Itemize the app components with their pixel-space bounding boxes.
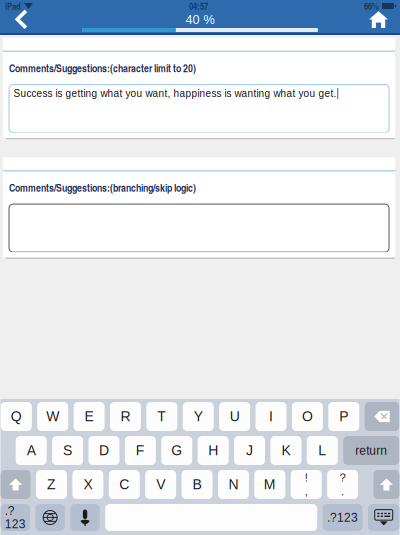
staticText: J [246, 443, 253, 458]
button[interactable]: D [88, 436, 119, 465]
button[interactable]: return [343, 436, 399, 465]
staticText: P [339, 409, 348, 424]
staticText: D [99, 443, 109, 458]
button[interactable]: W [37, 402, 68, 431]
staticText: K [281, 443, 290, 458]
button[interactable]: B [182, 470, 213, 499]
staticText: V [156, 477, 165, 492]
staticText: Y [194, 409, 203, 424]
button[interactable]: Back [0, 8, 42, 30]
staticText: N [228, 477, 238, 492]
button[interactable]: Home [357, 8, 400, 30]
staticText: ? [340, 471, 346, 484]
button[interactable]: Q [1, 402, 32, 431]
button[interactable]: T [146, 402, 177, 431]
button[interactable]: Success is getting what you want, happin… [3, 76, 395, 133]
button[interactable]: Shift [373, 470, 399, 499]
button[interactable]: Next keyboard [35, 504, 65, 531]
button[interactable]: J [234, 436, 265, 465]
button[interactable]: M [254, 470, 285, 499]
button[interactable]: H [198, 436, 229, 465]
button[interactable]: Hide keyboard [368, 504, 399, 531]
staticText: return [355, 444, 387, 457]
staticText: W [46, 409, 59, 424]
button[interactable]: Z [36, 470, 67, 499]
staticText: H [208, 443, 218, 458]
button[interactable]: C [109, 470, 140, 499]
button[interactable]: R [110, 402, 141, 431]
button[interactable]: I [255, 402, 286, 431]
staticText: E [85, 409, 94, 424]
button[interactable]: ! [291, 470, 322, 499]
button[interactable]: G [161, 436, 192, 465]
staticText: S [63, 443, 72, 458]
staticText: Success is getting what you want, happin… [13, 88, 336, 99]
staticText: L [318, 443, 326, 458]
staticText: C [119, 477, 129, 492]
button[interactable]: X [72, 470, 103, 499]
button[interactable]: Dictate [70, 504, 100, 531]
staticText: . [341, 485, 344, 498]
button[interactable]: O [292, 402, 323, 431]
button[interactable]: P [328, 402, 359, 431]
staticText: F [136, 443, 145, 458]
staticText: .?123 [5, 504, 26, 531]
staticText: , [305, 485, 308, 498]
staticText: Z [47, 477, 56, 492]
staticText: Comments/Suggestions:(branching/skip log… [9, 180, 196, 195]
staticText: M [264, 477, 276, 492]
staticText: ! [305, 471, 308, 484]
staticText: Q [11, 409, 22, 424]
staticText: 66% [364, 0, 379, 13]
staticText: I [269, 409, 273, 424]
button[interactable] [3, 195, 395, 252]
button[interactable]: .?123 [323, 504, 363, 531]
button[interactable]: Shift [1, 470, 31, 499]
staticText: B [193, 477, 202, 492]
staticText: U [230, 409, 240, 424]
button[interactable]: N [218, 470, 249, 499]
button[interactable]: Y [183, 402, 214, 431]
button[interactable]: S [52, 436, 83, 465]
button[interactable]: ? [327, 470, 358, 499]
button[interactable]: .?123 [0, 504, 30, 531]
staticText: R [120, 409, 130, 424]
staticText: Comments/Suggestions:(character limit to… [9, 60, 196, 76]
button[interactable]: E [74, 402, 105, 431]
button[interactable]: F [125, 436, 156, 465]
staticText: O [302, 409, 313, 424]
staticText: iPad [5, 0, 21, 13]
button[interactable]: U [219, 402, 250, 431]
staticText: 04:57 [189, 0, 208, 13]
button[interactable]: A [16, 436, 47, 465]
button[interactable]: Delete [365, 402, 399, 431]
button[interactable]: V [145, 470, 176, 499]
button[interactable]: K [270, 436, 301, 465]
staticText: G [171, 443, 182, 458]
staticText: T [157, 409, 166, 424]
button[interactable]: L [307, 436, 338, 465]
staticText: 40 % [185, 12, 214, 27]
staticText: X [83, 477, 92, 492]
staticText: A [27, 443, 36, 458]
staticText: .?123 [327, 511, 358, 524]
